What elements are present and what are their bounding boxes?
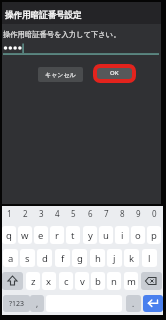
staticText: 4 [55,208,60,219]
staticText: o [135,229,141,242]
staticText: j [113,252,116,265]
button[interactable] [141,272,162,290]
staticText: g [77,252,83,265]
staticText: . [132,298,135,309]
button[interactable]: r [50,226,64,244]
button[interactable]: 3 [34,208,48,219]
button[interactable]: d [37,249,52,267]
button[interactable]: h [90,249,105,267]
staticText: 5 [71,208,76,219]
button[interactable]: x [42,272,56,290]
button[interactable]: OK [95,65,134,81]
button[interactable]: l [142,249,157,267]
button[interactable]: 4 [50,208,64,219]
staticText: x [46,275,52,288]
staticText: p [151,229,157,242]
staticText: h [95,252,101,265]
button[interactable]: k [124,249,139,267]
staticText: a [8,252,14,265]
staticText: 操作用暗証番号を入力して下さい。 [3,30,121,39]
staticText: f [61,252,65,265]
button[interactable]: ?123 [3,295,30,312]
button[interactable]: 8 [115,208,129,219]
button[interactable]: a [3,249,18,267]
staticText: e [38,229,44,242]
staticText: ?123 [9,299,25,309]
button[interactable]: z [26,272,40,290]
button[interactable] [2,272,23,290]
staticText: u [103,229,109,242]
button[interactable]: i [115,226,129,244]
staticText: b [95,275,101,288]
button[interactable] [143,295,163,312]
staticText: w [21,229,29,242]
button[interactable]: e [34,226,48,244]
button[interactable]: g [72,249,87,267]
button[interactable]: 5 [66,208,80,219]
staticText: n [111,275,117,288]
staticText: 8 [120,208,125,219]
staticText: 0 [152,208,157,219]
button[interactable]: 7 [99,208,113,219]
staticText: 1 [7,208,12,219]
button[interactable]: 6 [83,208,97,219]
staticText: キャンセル [45,71,76,79]
button[interactable]: 1 [2,208,16,219]
staticText: 9 [136,208,141,219]
staticText: , [36,298,39,309]
staticText: 操作用暗証番号設定 [5,10,82,21]
button[interactable]: u [99,226,113,244]
staticText: q [6,229,12,242]
button[interactable]: o [131,226,145,244]
staticText: s [25,252,30,265]
button[interactable]: s [20,249,35,267]
button[interactable]: n [107,272,121,290]
button[interactable]: m [124,272,138,290]
button[interactable]: 0 [147,208,161,219]
staticText: r [55,229,59,242]
staticText: k [129,252,135,265]
staticText: 3 [39,208,44,219]
button[interactable]: y [83,226,97,244]
staticText: l [148,252,151,265]
staticText: d [42,252,48,265]
button[interactable]: b [91,272,105,290]
button[interactable]: 2 [18,208,32,219]
staticText: v [80,275,85,288]
button[interactable]: 9 [131,208,145,219]
button[interactable]: w [18,226,32,244]
button[interactable]: f [55,249,70,267]
button[interactable]: v [75,272,89,290]
button[interactable]: q [2,226,16,244]
staticText: c [64,275,69,288]
button[interactable]: t [66,226,80,244]
staticText: 6 [88,208,93,219]
staticText: 7 [104,208,109,219]
button[interactable]: c [59,272,73,290]
button[interactable]: j [107,249,122,267]
staticText: z [31,275,36,288]
button[interactable]: p [147,226,161,244]
staticText: 2 [23,208,28,219]
staticText: i [121,229,124,242]
button[interactable]: キャンセル [38,67,83,82]
button[interactable]: . [126,295,141,312]
staticText: y [88,229,93,242]
staticText: t [71,229,75,242]
staticText: OK [110,69,119,77]
staticText: m [127,275,136,288]
button[interactable]: , [30,295,44,312]
